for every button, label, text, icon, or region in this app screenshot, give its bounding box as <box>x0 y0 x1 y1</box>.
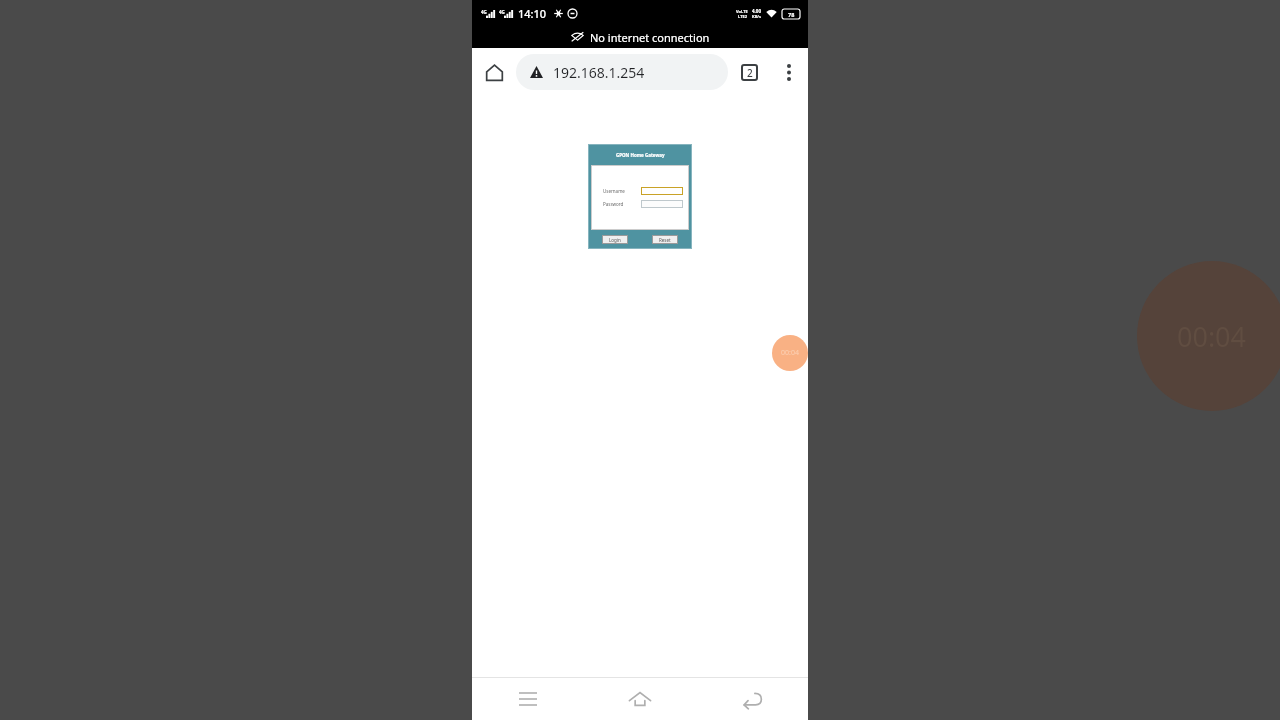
staticText: 2 <box>747 66 753 80</box>
staticText: Password <box>603 201 624 207</box>
staticText: 78 <box>788 11 795 18</box>
staticText: KB/s <box>752 14 761 19</box>
button[interactable]: Tabs, 2 open <box>728 51 770 93</box>
staticText: Reset <box>659 237 671 243</box>
button[interactable]: Stop screen recording <box>772 335 808 371</box>
staticText: 4G <box>481 9 487 15</box>
staticText: No internet connection <box>590 30 710 45</box>
staticText: LTE2 <box>738 14 747 19</box>
button[interactable]: Home <box>584 678 696 720</box>
button[interactable]: Recent apps <box>472 678 584 720</box>
staticText: 00:04 <box>1177 318 1247 355</box>
staticText: 00:04 <box>781 348 799 358</box>
button[interactable]: Login <box>602 235 628 244</box>
button[interactable]: Reset <box>652 235 678 244</box>
staticText: 192.168.1.254 <box>553 63 645 82</box>
button[interactable]: Back <box>696 678 808 720</box>
staticText: 4G <box>499 9 505 15</box>
staticText: VoLTE <box>736 9 748 14</box>
button[interactable]: 192.168.1.254 <box>516 54 728 90</box>
button[interactable]: More options <box>770 53 808 91</box>
staticText: 14:10 <box>518 6 547 21</box>
button[interactable]: Username <box>641 187 683 195</box>
button[interactable]: Password <box>641 200 683 208</box>
button[interactable]: Home <box>472 50 516 94</box>
staticText: Username <box>603 188 625 194</box>
staticText: 4.00 <box>752 8 761 14</box>
staticText: Login <box>609 237 621 243</box>
staticText: GPON Home Gateway <box>616 152 665 158</box>
